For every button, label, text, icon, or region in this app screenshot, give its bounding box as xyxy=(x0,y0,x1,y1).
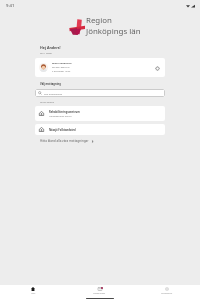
staticText: Hej Anders! xyxy=(40,45,61,50)
staticText: Länssjukhuset Ryhov xyxy=(49,115,72,118)
staticText: Maria Andersson xyxy=(52,62,72,65)
staticText: Välj mottagning xyxy=(40,82,61,86)
staticText: Sök mottagning xyxy=(44,92,62,95)
staticText: Din 1 dagar xyxy=(40,52,52,55)
staticText: Senast besökta xyxy=(40,101,55,104)
staticText: 9:41 xyxy=(6,3,15,9)
button[interactable]: Sök mottagning xyxy=(35,89,165,97)
staticText: Meddelanden xyxy=(93,292,106,295)
button[interactable]: Maria Andersson xyxy=(35,58,165,77)
button[interactable]: Hitta bland alla våra mottagningar xyxy=(35,139,94,143)
staticText: Region xyxy=(86,15,112,26)
button[interactable]: Nässjö Folktandvård xyxy=(35,124,165,135)
staticText: Nässjö Folktandvård xyxy=(49,128,76,132)
button[interactable]: Rehabiliteringscentrum xyxy=(35,106,165,121)
staticText: Hem xyxy=(31,292,36,295)
staticText: Recept LäkarPlus xyxy=(52,66,70,69)
staticText: Rehabiliteringscentrum xyxy=(49,110,80,114)
staticText: Hitta bland alla våra mottagningar xyxy=(40,139,89,143)
staticText: Jönköpings län xyxy=(86,26,141,37)
button[interactable]: Inställningar xyxy=(133,287,200,295)
staticText: 4 december 10:00 xyxy=(52,70,71,73)
button[interactable]: Meddelanden xyxy=(66,287,133,295)
staticText: Inställningar xyxy=(161,292,173,295)
button[interactable]: Mer information xyxy=(153,64,161,72)
button[interactable]: Hem xyxy=(0,287,66,295)
